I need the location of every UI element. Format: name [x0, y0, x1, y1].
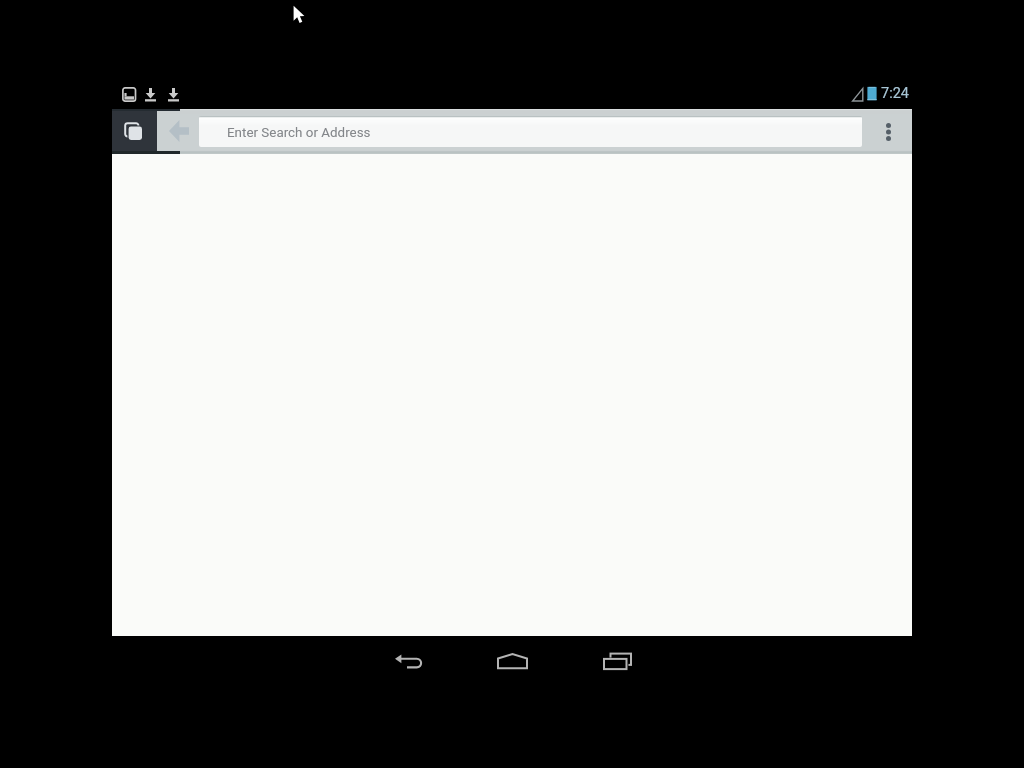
button[interactable]: More options	[864, 109, 912, 154]
staticText: 7:24	[881, 85, 909, 102]
staticText: Enter Search or Address	[227, 125, 371, 141]
button[interactable]: Home	[477, 636, 547, 686]
button[interactable]: Tabs	[112, 109, 157, 154]
button[interactable]: Back	[373, 636, 443, 686]
button[interactable]: Enter Search or Address	[199, 116, 862, 147]
button[interactable]: Back	[157, 109, 202, 154]
button[interactable]: Recent apps	[582, 636, 652, 686]
